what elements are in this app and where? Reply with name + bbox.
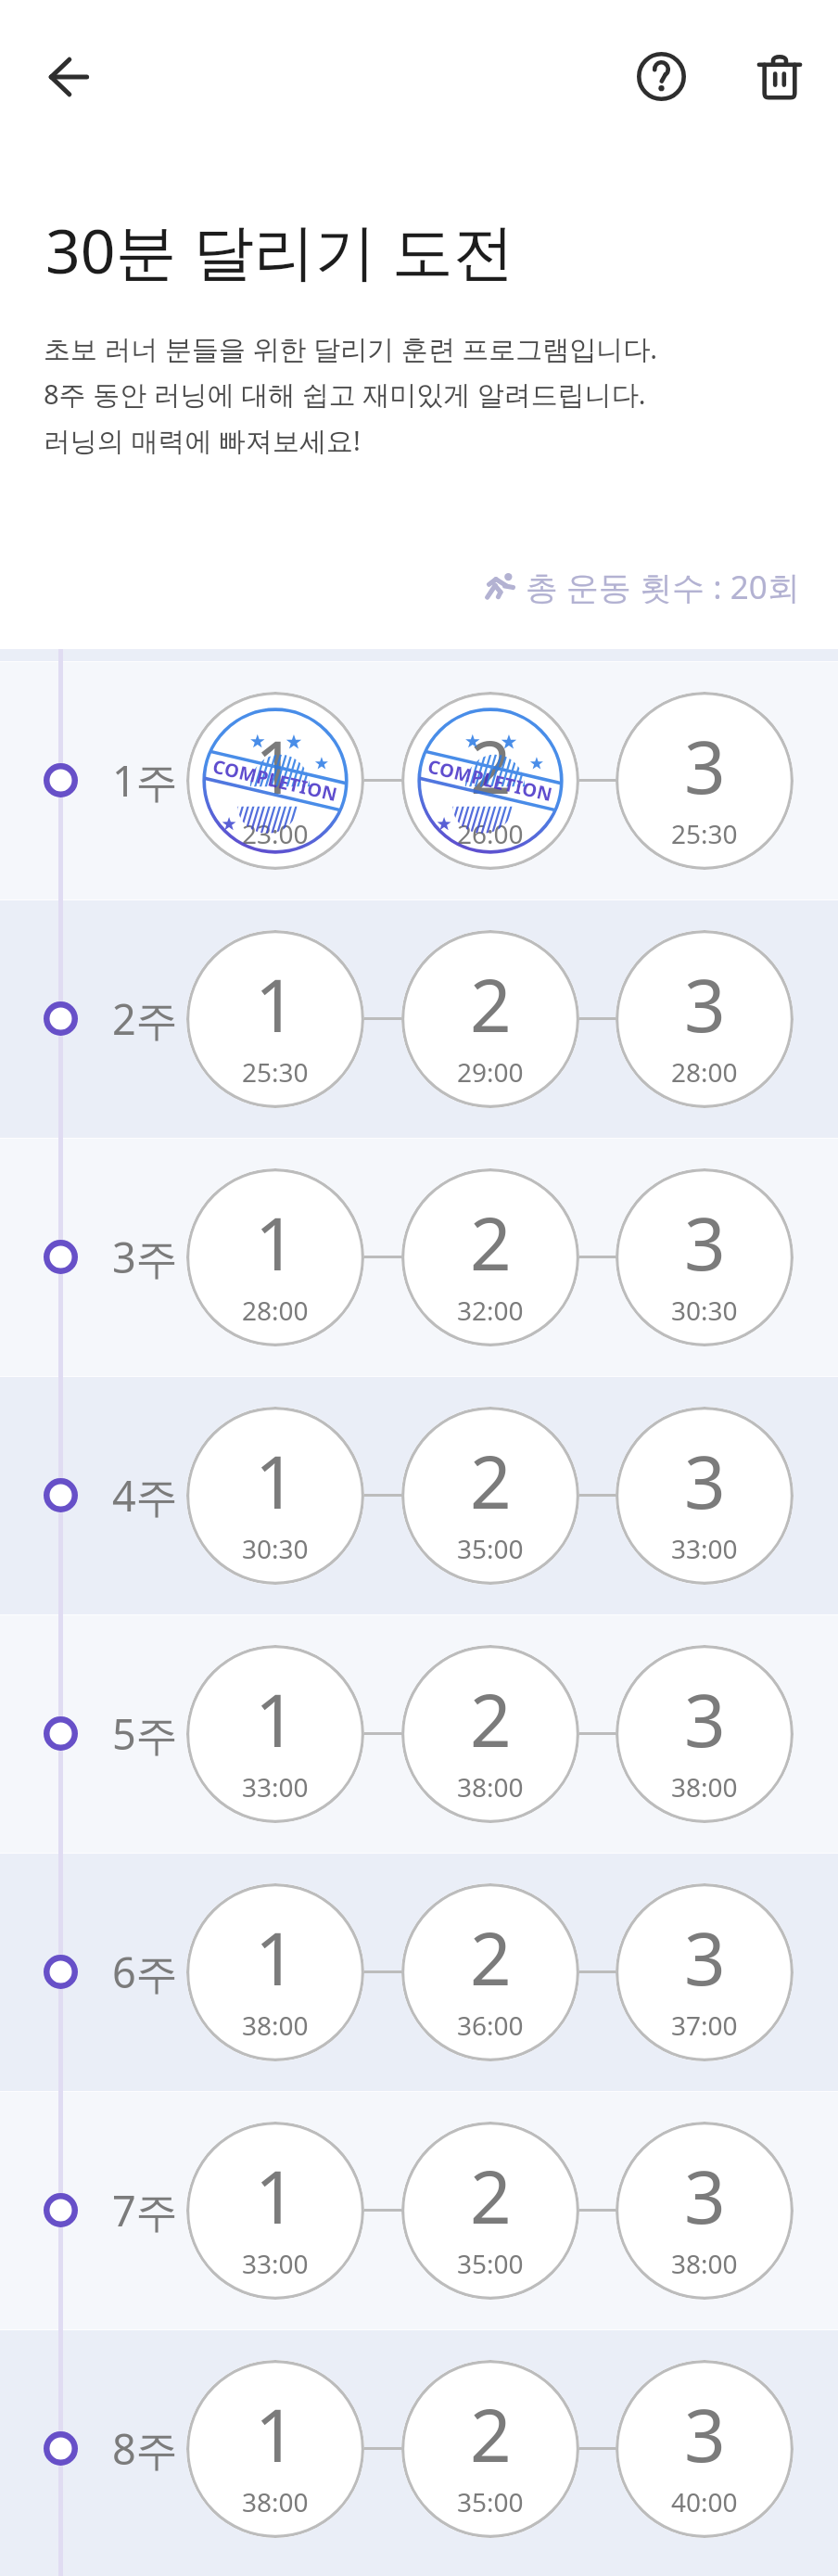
staticText: 2	[470, 1908, 512, 2007]
button[interactable]: 2	[401, 1645, 579, 1823]
button[interactable]: 1	[186, 2122, 364, 2300]
staticText: 33:00	[242, 1769, 309, 1804]
staticText: 3	[684, 717, 726, 815]
staticText: 5주	[112, 1705, 178, 1762]
button[interactable]: 2주	[0, 899, 838, 1138]
button[interactable]: 3	[616, 2360, 794, 2538]
button[interactable]: 1주	[0, 661, 838, 899]
staticText: 3	[684, 1670, 726, 1768]
staticText: 2	[470, 717, 512, 815]
button[interactable]: 6주	[0, 1853, 838, 2091]
staticText: 38:00	[242, 2008, 309, 2043]
staticText: 38:00	[457, 1769, 524, 1804]
button[interactable]: 1	[186, 1168, 364, 1346]
staticText: 2	[470, 955, 512, 1053]
staticText: 1	[255, 2147, 297, 2245]
staticText: 28:00	[242, 1293, 309, 1328]
staticText: 30분 달리기 도전	[45, 208, 514, 291]
staticText: 3	[684, 2385, 726, 2483]
button[interactable]: 3	[616, 2122, 794, 2300]
button[interactable]: 3	[616, 692, 794, 870]
staticText: 2	[470, 1670, 512, 1768]
staticText: 37:00	[671, 2008, 738, 2043]
button[interactable]: 3	[616, 1168, 794, 1346]
staticText: 38:00	[671, 2246, 738, 2281]
button[interactable]: 3	[616, 930, 794, 1108]
staticText: 40:00	[671, 2484, 738, 2519]
staticText: 30:30	[242, 1531, 309, 1566]
button[interactable]: Delete	[742, 38, 817, 113]
button[interactable]: 7주	[0, 2091, 838, 2329]
button[interactable]: 3	[616, 1407, 794, 1585]
staticText: 38:00	[671, 1769, 738, 1804]
staticText: 3	[684, 2147, 726, 2245]
staticText: 8주	[112, 2420, 178, 2477]
staticText: 1	[255, 1908, 297, 2007]
button[interactable]: 3	[616, 1883, 794, 2061]
button[interactable]: 1	[186, 692, 364, 870]
staticText: 2	[470, 2147, 512, 2245]
staticText: 6주	[112, 1944, 178, 2000]
staticText: 3	[684, 1432, 726, 1530]
button[interactable]: 2	[401, 1407, 579, 1585]
button[interactable]: 3주	[0, 1138, 838, 1376]
staticText: 1	[255, 1432, 297, 1530]
staticText: 3	[684, 955, 726, 1053]
staticText: 35:00	[457, 1531, 524, 1566]
staticText: 2	[470, 1432, 512, 1530]
staticText: 4주	[112, 1467, 178, 1524]
button[interactable]: 3	[616, 1645, 794, 1823]
button[interactable]: Back	[32, 40, 106, 114]
staticText: 1	[255, 955, 297, 1053]
staticText: 1	[255, 717, 297, 815]
button[interactable]: 5주	[0, 1614, 838, 1853]
button[interactable]: 4주	[0, 1376, 838, 1614]
button[interactable]: 2	[401, 1883, 579, 2061]
button[interactable]: 2	[401, 2360, 579, 2538]
staticText: 2주	[112, 990, 178, 1047]
button[interactable]: 2	[401, 1168, 579, 1346]
staticText: 30:30	[671, 1293, 738, 1328]
staticText: COMPLETION	[210, 754, 341, 807]
staticText: 1	[255, 1670, 297, 1768]
staticText: 26:00	[457, 816, 524, 851]
staticText: 35:00	[457, 2246, 524, 2281]
button[interactable]: 1	[186, 2360, 364, 2538]
button[interactable]: 2	[401, 692, 579, 870]
button[interactable]: 1	[186, 1407, 364, 1585]
staticText: 36:00	[457, 2008, 524, 2043]
staticText: 32:00	[457, 1293, 524, 1328]
staticText: 총 운동 횟수 : 20회	[526, 565, 800, 609]
staticText: 2	[470, 1193, 512, 1292]
staticText: 3	[684, 1908, 726, 2007]
staticText: 23:00	[242, 816, 309, 851]
staticText: 1	[255, 1193, 297, 1292]
staticText: 38:00	[242, 2484, 309, 2519]
staticText: COMPLETION	[425, 754, 556, 807]
staticText: 35:00	[457, 2484, 524, 2519]
staticText: 33:00	[242, 2246, 309, 2281]
staticText: 3	[684, 1193, 726, 1292]
staticText: 1주	[112, 752, 178, 809]
button[interactable]: 1	[186, 930, 364, 1108]
staticText: 1	[255, 2385, 297, 2483]
button[interactable]: 1	[186, 1883, 364, 2061]
staticText: 25:30	[242, 1054, 309, 1090]
button[interactable]: 1	[186, 1645, 364, 1823]
staticText: 29:00	[457, 1054, 524, 1090]
staticText: 25:30	[671, 816, 738, 851]
staticText: 3주	[112, 1229, 178, 1285]
staticText: 초보 러너 분들을 위한 달리기 훈련 프로그램입니다. 8주 동안 러닝에 대…	[44, 330, 658, 459]
button[interactable]: 2	[401, 2122, 579, 2300]
button[interactable]: 2	[401, 930, 579, 1108]
staticText: 28:00	[671, 1054, 738, 1090]
button[interactable]: 8주	[0, 2329, 838, 2568]
staticText: 2	[470, 2385, 512, 2483]
button[interactable]: Help	[624, 39, 699, 114]
staticText: 7주	[112, 2182, 178, 2238]
staticText: 33:00	[671, 1531, 738, 1566]
